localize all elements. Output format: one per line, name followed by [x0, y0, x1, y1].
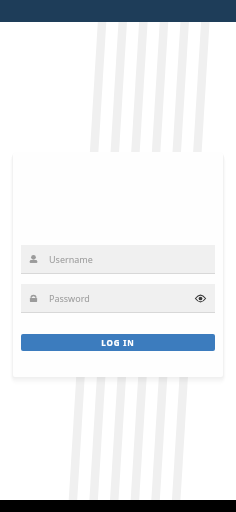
staticText: Password	[49, 292, 192, 304]
staticText: Username	[49, 253, 208, 265]
button[interactable]: Password	[21, 284, 215, 312]
button[interactable]: Username	[21, 245, 215, 273]
staticText: LOG IN	[101, 337, 135, 348]
button[interactable]: Show password	[192, 290, 208, 306]
button[interactable]: LOG IN	[21, 334, 215, 351]
